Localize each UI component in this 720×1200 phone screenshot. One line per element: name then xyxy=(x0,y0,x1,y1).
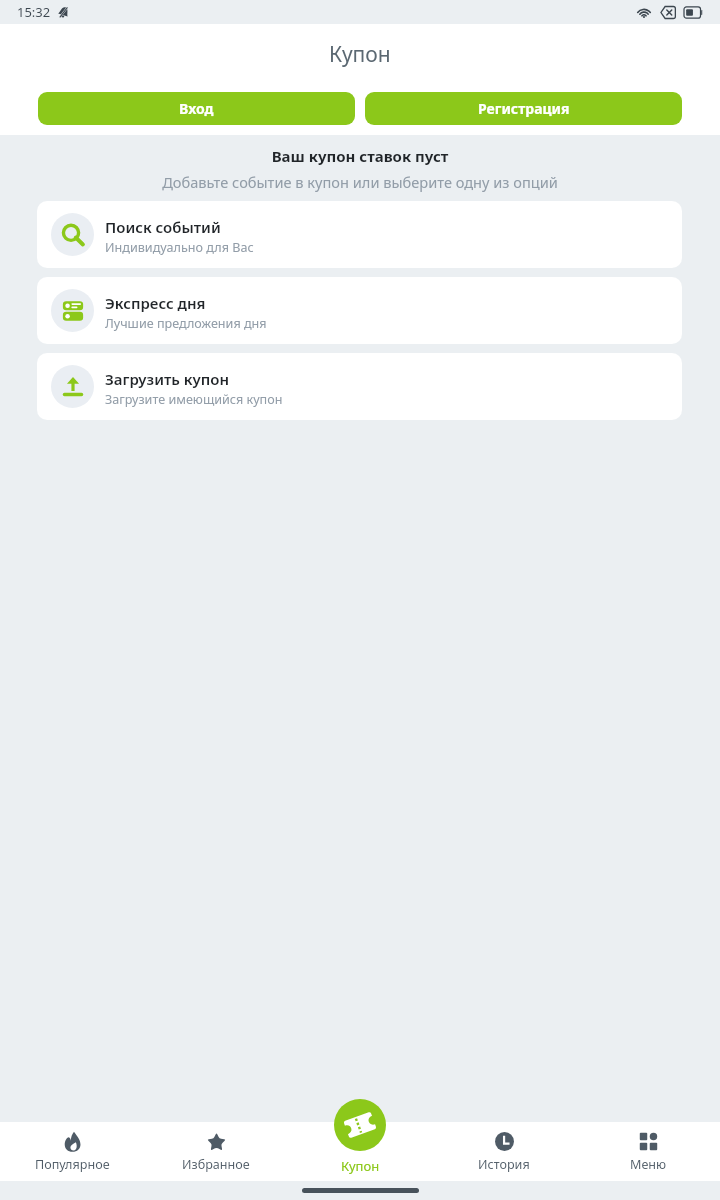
button[interactable]: История xyxy=(432,1122,576,1181)
staticText: Лучшие предложения дня xyxy=(105,315,267,332)
button[interactable]: Избранное xyxy=(144,1122,288,1181)
button[interactable]: Загрузить купон xyxy=(37,353,682,420)
staticText: Ваш купон ставок пуст xyxy=(0,146,720,166)
staticText: Поиск событий xyxy=(105,217,221,237)
staticText: Регистрация xyxy=(478,99,570,118)
staticText: Индивидуально для Вас xyxy=(105,239,254,256)
staticText: Купон xyxy=(341,1157,380,1175)
staticText: Избранное xyxy=(182,1156,250,1173)
button[interactable]: Вход xyxy=(38,92,355,125)
button[interactable]: Экспресс дня xyxy=(37,277,682,344)
staticText: Экспресс дня xyxy=(105,293,206,313)
staticText: 15:32 xyxy=(17,3,51,21)
button[interactable]: Купон xyxy=(288,1122,432,1181)
staticText: Купон xyxy=(329,40,391,69)
staticText: Вход xyxy=(179,99,214,118)
button[interactable]: Меню xyxy=(576,1122,720,1181)
staticText: Добавьте событие в купон или выберите од… xyxy=(0,172,720,192)
button[interactable]: Поиск событий xyxy=(37,201,682,268)
staticText: История xyxy=(478,1156,530,1173)
staticText: Загрузить купон xyxy=(105,369,230,389)
staticText: Загрузите имеющийся купон xyxy=(105,391,283,408)
staticText: Меню xyxy=(630,1156,667,1173)
button[interactable]: Купон xyxy=(334,1099,386,1151)
button[interactable]: Популярное xyxy=(0,1122,144,1181)
button[interactable]: Регистрация xyxy=(365,92,682,125)
staticText: Популярное xyxy=(35,1156,110,1173)
